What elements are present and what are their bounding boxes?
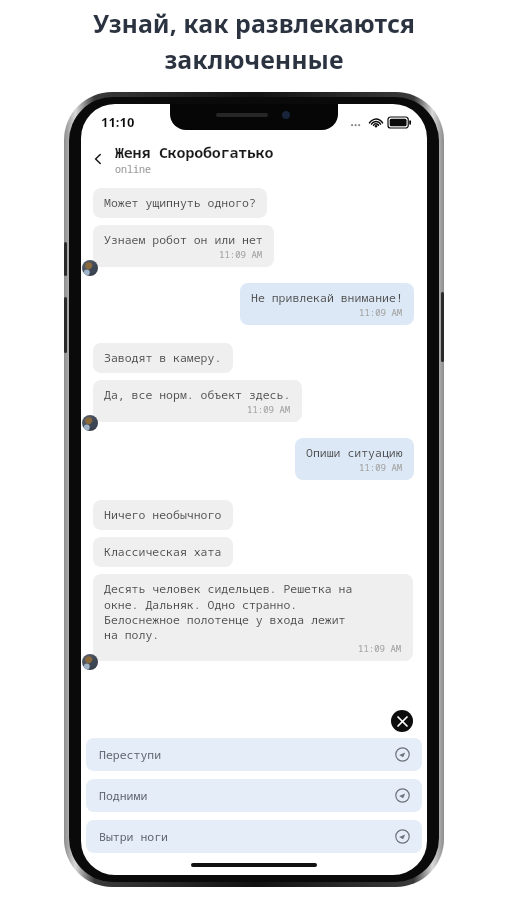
staticText: 11:09 AM	[359, 461, 403, 473]
button[interactable]: Back	[81, 138, 115, 180]
staticText: online	[115, 162, 151, 176]
staticText: Подними	[99, 788, 395, 804]
staticText: Узнаем робот он или нет	[104, 232, 263, 248]
button[interactable]: Подними	[86, 779, 422, 812]
staticText: Классическая хата	[104, 544, 222, 560]
button[interactable]: Может ущипнуть одного?	[93, 188, 267, 218]
staticText: Не привлекай внимание!	[251, 290, 403, 306]
staticText: 11:10	[101, 113, 135, 131]
button[interactable]: Ничего необычного	[93, 500, 233, 530]
staticText: Может ущипнуть одного?	[104, 195, 256, 211]
staticText: заключенные	[164, 42, 344, 76]
button[interactable]: Да, все норм. объект здесь.	[93, 380, 302, 422]
staticText: 11:09 AM	[358, 642, 402, 654]
staticText: Заводят в камеру.	[104, 350, 222, 366]
button[interactable]: Заводят в камеру.	[93, 343, 233, 373]
button[interactable]: Не привлекай внимание!	[240, 283, 414, 325]
button[interactable]: Опиши ситуацию	[295, 438, 414, 480]
staticText: Узнай, как развлекаются	[93, 6, 415, 40]
button[interactable]: Десять человек сидельцев. Решетка на окн…	[93, 574, 413, 661]
staticText: Опиши ситуацию	[306, 445, 403, 461]
button[interactable]: Узнаем робот он или нет	[93, 225, 274, 267]
staticText: Женя Скоробогатько	[115, 142, 274, 162]
staticText: 11:09 AM	[359, 306, 403, 318]
button[interactable]: Классическая хата	[93, 537, 233, 567]
staticText: Десять человек сидельцев. Решетка на окн…	[104, 581, 353, 642]
staticText: Да, все норм. объект здесь.	[104, 387, 291, 403]
staticText: Переступи	[99, 747, 395, 763]
staticText: Ничего необычного	[104, 507, 222, 523]
staticText: Вытри ноги	[99, 829, 395, 845]
button[interactable]: Переступи	[86, 738, 422, 771]
button[interactable]: Вытри ноги	[86, 820, 422, 853]
button[interactable]: Close suggestions	[391, 710, 413, 732]
staticText: 11:09 AM	[247, 403, 291, 415]
button[interactable]: Back	[81, 138, 427, 180]
staticText: 11:09 AM	[219, 248, 263, 260]
